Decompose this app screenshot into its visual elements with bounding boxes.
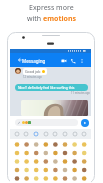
button[interactable] — [14, 131, 20, 137]
staticText: Good job — [25, 69, 41, 74]
button[interactable]: Good job — [23, 68, 47, 75]
button[interactable]: Send — [81, 119, 89, 127]
button[interactable] — [23, 131, 29, 137]
button[interactable]: Photo — [21, 100, 88, 116]
staticText: Express more — [29, 3, 74, 13]
staticText: Nice!! definitely feel like surfing this… — [18, 85, 88, 90]
staticText: with — [27, 14, 43, 24]
button[interactable]: Back — [17, 57, 23, 63]
button[interactable] — [33, 131, 39, 137]
button[interactable] — [52, 131, 58, 137]
button[interactable] — [15, 119, 78, 126]
staticText: Messaging — [22, 58, 46, 64]
button[interactable] — [72, 131, 78, 137]
button[interactable]: Nice!! definitely feel like surfing this… — [15, 84, 88, 91]
button[interactable] — [62, 131, 68, 137]
staticText: 12 minutes ago — [23, 75, 42, 79]
staticText: 11 minutes ago — [71, 91, 90, 95]
button[interactable] — [43, 131, 49, 137]
button[interactable]: More options — [79, 58, 85, 64]
button[interactable]: Call — [70, 58, 76, 64]
staticText: emotions — [43, 14, 76, 24]
button[interactable] — [81, 131, 87, 137]
button[interactable]: Video call — [61, 58, 67, 64]
